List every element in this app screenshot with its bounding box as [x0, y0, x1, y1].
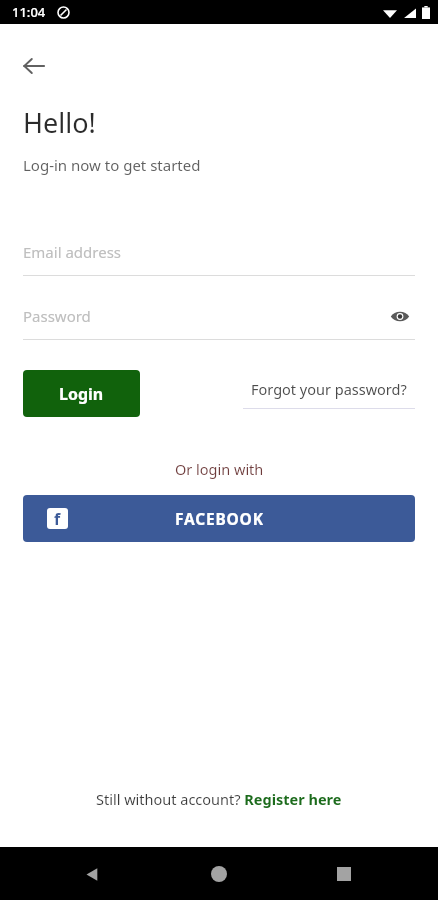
button[interactable]: Login: [23, 370, 140, 417]
button[interactable]: Back: [70, 852, 114, 896]
staticText: Forgot your password?: [251, 379, 407, 399]
staticText: f: [54, 508, 61, 529]
button[interactable]: f: [23, 495, 415, 542]
button[interactable]: Back: [12, 44, 56, 88]
staticText: Still without account? Register here: [96, 789, 342, 809]
button[interactable]: Show password: [385, 301, 415, 331]
button[interactable]: Home: [197, 852, 241, 896]
staticText: FACEBOOK: [175, 508, 264, 529]
button[interactable]: Forgot your password?: [243, 379, 415, 409]
staticText: Password: [23, 306, 91, 326]
button[interactable]: Recent apps: [322, 852, 366, 896]
button[interactable]: Still without account? Register here: [0, 789, 438, 809]
staticText: Log-in now to get started: [23, 155, 201, 175]
staticText: 11:04: [12, 3, 46, 21]
staticText: Login: [59, 383, 104, 405]
staticText: Email address: [23, 242, 122, 262]
staticText: Or login with: [175, 459, 264, 479]
staticText: Hello!: [23, 104, 96, 141]
